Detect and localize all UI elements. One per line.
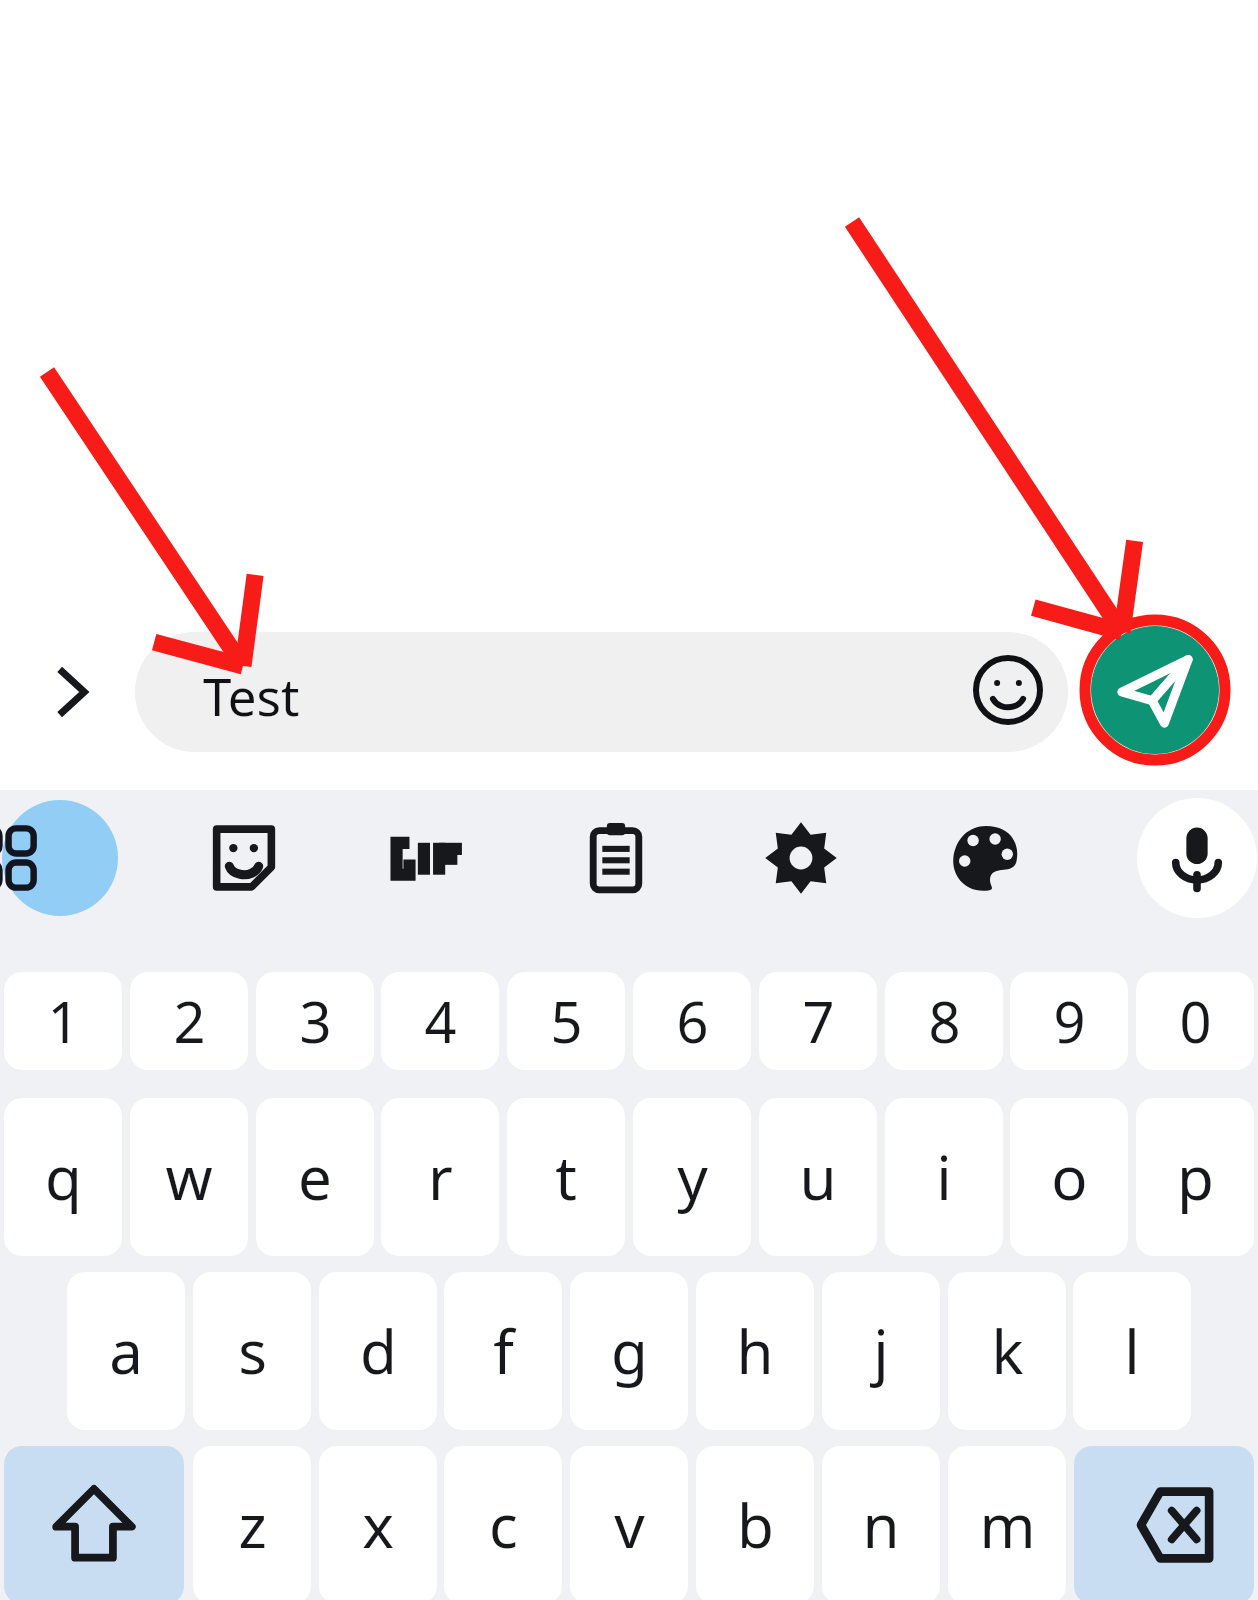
button[interactable]: c — [444, 1446, 562, 1600]
button[interactable]: a — [67, 1272, 185, 1430]
button[interactable]: z — [193, 1446, 311, 1600]
button[interactable]: 6 — [633, 972, 751, 1070]
button[interactable]: q — [4, 1098, 122, 1256]
button[interactable]: Keyboard tool — [745, 802, 857, 914]
button[interactable]: d — [319, 1272, 437, 1430]
button[interactable]: j — [822, 1272, 940, 1430]
staticText: 1 — [47, 983, 80, 1059]
button[interactable]: m — [948, 1446, 1066, 1600]
staticText: 8 — [928, 983, 961, 1059]
button[interactable]: Expand — [28, 645, 116, 739]
staticText: s — [238, 1310, 267, 1392]
staticText: n — [862, 1484, 900, 1566]
button[interactable]: Emoji — [960, 642, 1056, 738]
button[interactable]: t — [507, 1098, 625, 1256]
staticText: m — [979, 1484, 1036, 1566]
button[interactable]: Keyboard tool — [560, 802, 672, 914]
button[interactable] — [135, 632, 1068, 752]
staticText: w — [165, 1136, 213, 1218]
staticText: z — [238, 1484, 267, 1566]
button[interactable]: w — [130, 1098, 248, 1256]
button[interactable]: 4 — [381, 972, 499, 1070]
button[interactable]: u — [759, 1098, 877, 1256]
staticText: 7 — [802, 983, 835, 1059]
button[interactable]: Shift — [4, 1446, 184, 1600]
button[interactable]: v — [570, 1446, 688, 1600]
button[interactable]: Keyboard tool — [374, 802, 486, 914]
button[interactable]: g — [570, 1272, 688, 1430]
staticText: q — [45, 1136, 82, 1218]
staticText: l — [1124, 1310, 1140, 1392]
staticText: o — [1051, 1136, 1088, 1218]
staticText: k — [991, 1310, 1024, 1392]
button[interactable]: i — [885, 1098, 1003, 1256]
staticText: c — [489, 1484, 518, 1566]
staticText: 4 — [424, 983, 457, 1059]
button[interactable]: Keyboard tool — [1141, 802, 1253, 914]
button[interactable]: Backspace — [1074, 1446, 1254, 1600]
button[interactable]: o — [1010, 1098, 1128, 1256]
button[interactable]: y — [633, 1098, 751, 1256]
staticText: a — [109, 1310, 143, 1392]
button[interactable]: k — [948, 1272, 1066, 1430]
staticText: b — [737, 1484, 774, 1566]
staticText: x — [362, 1484, 394, 1566]
staticText: f — [493, 1310, 514, 1392]
staticText: 5 — [550, 983, 583, 1059]
button[interactable]: x — [319, 1446, 437, 1600]
button[interactable]: f — [444, 1272, 562, 1430]
button[interactable]: l — [1073, 1272, 1191, 1430]
staticText: 6 — [676, 983, 709, 1059]
button[interactable]: r — [381, 1098, 499, 1256]
staticText: d — [360, 1310, 397, 1392]
staticText: i — [936, 1136, 952, 1218]
staticText: t — [555, 1136, 577, 1218]
button[interactable]: Keyboard tool — [0, 802, 60, 914]
staticText: 2 — [173, 983, 206, 1059]
button[interactable]: e — [256, 1098, 374, 1256]
staticText: Test — [203, 661, 300, 730]
staticText: r — [428, 1136, 453, 1218]
staticText: y — [677, 1136, 708, 1218]
staticText: 3 — [299, 983, 332, 1059]
staticText: g — [611, 1310, 648, 1392]
button[interactable]: b — [696, 1446, 814, 1600]
button[interactable]: 1 — [4, 972, 122, 1070]
button[interactable]: 9 — [1010, 972, 1128, 1070]
button[interactable]: p — [1136, 1098, 1254, 1256]
button[interactable]: Keyboard tool — [188, 802, 300, 914]
button[interactable]: Send — [1090, 625, 1220, 755]
button[interactable]: 2 — [130, 972, 248, 1070]
staticText: 0 — [1179, 983, 1212, 1059]
staticText: e — [298, 1136, 332, 1218]
button[interactable]: 0 — [1136, 972, 1254, 1070]
button[interactable]: 5 — [507, 972, 625, 1070]
button[interactable]: h — [696, 1272, 814, 1430]
staticText: h — [736, 1310, 774, 1392]
button[interactable]: s — [193, 1272, 311, 1430]
staticText: 9 — [1053, 983, 1086, 1059]
staticText: j — [873, 1310, 889, 1392]
button[interactable]: 7 — [759, 972, 877, 1070]
staticText: v — [614, 1484, 645, 1566]
button[interactable]: 8 — [885, 972, 1003, 1070]
staticText: u — [799, 1136, 837, 1218]
staticText: p — [1177, 1136, 1214, 1218]
button[interactable]: 3 — [256, 972, 374, 1070]
button[interactable]: Keyboard tool — [930, 802, 1042, 914]
button[interactable]: n — [822, 1446, 940, 1600]
